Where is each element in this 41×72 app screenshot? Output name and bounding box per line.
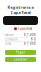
staticText: $ 1.000: [24, 33, 36, 37]
button[interactable]: Pagar: [5, 50, 36, 55]
staticText: Registrarse a: [7, 4, 33, 10]
staticText: Copa Total: [18, 27, 32, 30]
staticText: Cancelar: [14, 58, 27, 61]
staticText: $ 1.000: [24, 42, 36, 45]
staticText: Pagar: [16, 51, 25, 54]
staticText: Comision: [5, 38, 18, 41]
staticText: $ 0: [31, 38, 36, 41]
staticText: Monto: [5, 33, 14, 37]
button[interactable]: Cancelar: [5, 57, 36, 62]
staticText: Copa Total: [10, 10, 30, 15]
staticText: Total: [5, 42, 11, 45]
